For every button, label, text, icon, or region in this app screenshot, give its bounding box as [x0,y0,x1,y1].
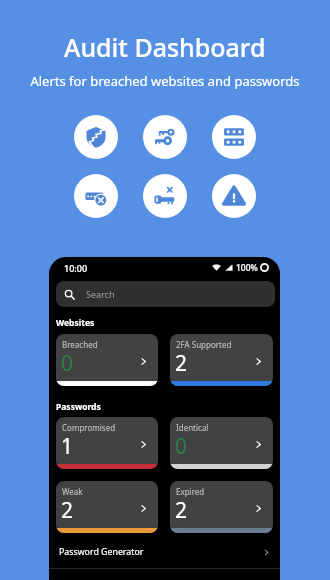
staticText: Breached [62,339,98,350]
staticText: Identical [176,422,209,433]
button[interactable]: Expired password [143,174,187,218]
staticText: 2 [175,496,188,525]
staticText: 1 [61,432,74,461]
button[interactable]: Identical [170,417,273,469]
button[interactable]: Stored passwords [212,115,256,159]
staticText: Compromised [62,422,116,433]
staticText: Expired [176,486,205,497]
staticText: 100% [236,262,258,274]
staticText: 2FA Supported [176,339,232,350]
staticText: Passwords [56,401,101,413]
staticText: 0 [175,432,188,461]
staticText: Audit Dashboard [64,30,266,64]
button[interactable]: Breached [56,334,158,386]
staticText: Search [86,288,115,300]
button[interactable]: 2FA Supported [170,334,273,386]
staticText: Password Generator [59,546,144,558]
staticText: Weak [62,486,83,497]
staticText: 2 [61,496,74,525]
staticText: Websites [56,317,95,329]
staticText: 0 [61,349,74,378]
button[interactable]: Expired [170,481,273,533]
button[interactable]: Compromised [56,417,158,469]
button[interactable]: Compromised password [74,174,118,218]
staticText: 10:00 [64,262,88,274]
button[interactable]: Password Generator [49,540,280,564]
button[interactable]: Weak password warning [212,174,256,218]
button[interactable]: Identical passwords [143,115,187,159]
staticText: 2 [175,349,188,378]
button[interactable]: Search [56,281,275,307]
staticText: Alerts for breached websites and passwor… [30,72,300,90]
button[interactable]: Weak [56,481,158,533]
button[interactable]: Breached websites [74,115,118,159]
